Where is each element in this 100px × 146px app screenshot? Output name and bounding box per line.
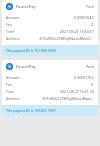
staticText: 3C9uRSQL2TBfGyMkLxuMwn... (42, 96, 94, 101)
staticText: 0.00001042 (74, 15, 94, 20)
staticText: 0 (91, 82, 94, 87)
button[interactable]: Fee (2, 21, 98, 28)
button[interactable]: FaucetPay (2, 0, 98, 56)
staticText: Amount (6, 75, 32, 80)
staticText: The payout ID is 161958 2189 (6, 48, 56, 53)
staticText: 0.00001763 (74, 75, 94, 80)
button[interactable]: Address (2, 95, 98, 102)
button[interactable]: Time (2, 88, 98, 95)
button[interactable]: Fee (2, 81, 98, 88)
staticText: 3C9uRSQL2TBfGyMkLxuMwnU... (39, 36, 94, 41)
button[interactable]: Address (2, 35, 98, 42)
staticText: Address (6, 96, 32, 101)
staticText: Paid (86, 64, 94, 69)
staticText: FaucetPay (16, 4, 36, 9)
staticText: Address (6, 36, 32, 41)
staticText: 0 (91, 22, 94, 27)
staticText: 2021-08-27 16:31:33 (60, 89, 94, 94)
button[interactable]: The payout ID is 160205 1937 (2, 105, 98, 116)
staticText: Time (6, 89, 32, 94)
button[interactable]: Time (2, 28, 98, 35)
staticText: 2021-09-21 10:53:57 (60, 29, 94, 34)
button[interactable]: FaucetPay (2, 60, 98, 116)
button[interactable]: Amount (2, 14, 98, 21)
other: Payment history list (0, 0, 100, 146)
button[interactable]: The payout ID is 161958 2189 (2, 45, 98, 56)
staticText: Fee (6, 82, 32, 87)
button[interactable]: Amount (2, 74, 98, 81)
staticText: The payout ID is 160205 1937 (6, 108, 56, 113)
staticText: Paid (86, 4, 94, 9)
staticText: Time (6, 29, 32, 34)
staticText: Amount (6, 15, 32, 20)
staticText: FaucetPay (16, 64, 36, 69)
staticText: Fee (6, 22, 32, 27)
